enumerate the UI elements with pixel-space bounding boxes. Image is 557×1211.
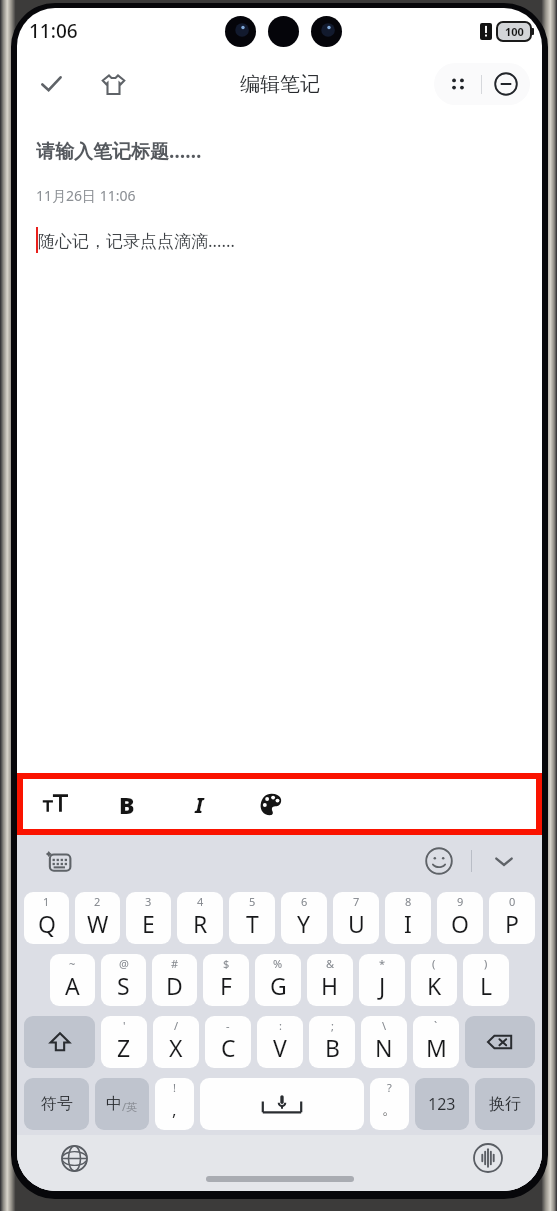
button[interactable]: 符号 [24,1078,89,1130]
staticText: 11月26日 11:06 [36,186,136,205]
staticText: 11:06 [29,18,78,44]
button[interactable]: $ [203,954,249,1006]
staticText: L [480,970,493,1001]
staticText: 0 [509,894,516,909]
staticText: ' [123,1018,126,1033]
button[interactable]: # [152,954,197,1006]
staticText: 3 [145,894,152,909]
staticText: F [220,970,232,1001]
button[interactable]: ; [309,1016,355,1068]
staticText: A [65,970,80,1001]
button[interactable]: Space [200,1078,364,1130]
button[interactable]: & [307,954,353,1006]
button[interactable]: 6 [281,892,327,944]
button[interactable]: Backspace [465,1016,535,1068]
staticText: 换行 [489,1094,521,1114]
staticText: ) [484,956,488,971]
staticText: ` [434,1018,438,1033]
button[interactable]: ) [463,954,509,1006]
button[interactable]: 5 [229,892,275,944]
staticText: - [226,1018,230,1033]
staticText: @ [119,956,129,971]
button[interactable]: ~ [50,954,95,1006]
staticText: , [172,1098,177,1121]
staticText: D [166,970,183,1001]
staticText: Z [117,1032,131,1063]
button[interactable]: Theme [93,64,133,104]
staticText: / [174,1018,179,1033]
staticText: 随心记，记录点点滴滴…… [38,229,235,252]
button[interactable]: 8 [385,892,431,944]
staticText: P [505,908,519,939]
button[interactable]: ` [413,1016,459,1068]
button[interactable]: Emoji [419,841,459,881]
button[interactable]: @ [101,954,146,1006]
staticText: 编辑笔记 [240,72,320,97]
staticText: 1 [43,894,50,909]
staticText: Y [297,908,311,939]
button[interactable]: Smart input [39,842,77,880]
button[interactable]: Font size [35,784,75,824]
staticText: C [221,1032,236,1063]
button[interactable]: Voice input [470,1140,506,1176]
button[interactable]: 2 [75,892,120,944]
button[interactable]: ( [411,954,457,1006]
staticText: N [375,1032,393,1063]
button[interactable]: 换行 [475,1078,535,1130]
staticText: 符号 [41,1094,73,1114]
staticText: B [325,1032,340,1063]
button[interactable]: Bold [107,784,147,824]
button[interactable]: 1 [24,892,69,944]
staticText: 5 [249,894,256,909]
button[interactable]: ' [101,1016,147,1068]
staticText: ( [432,956,436,971]
button[interactable]: \ [361,1016,407,1068]
staticText: ? [387,1080,392,1095]
staticText: \ [382,1018,387,1033]
staticText: V [273,1032,287,1063]
staticText: 9 [457,894,464,909]
button[interactable]: Language [57,1141,91,1175]
button[interactable]: ? [370,1078,409,1130]
button[interactable]: 0 [489,892,535,944]
staticText: U [348,908,365,939]
button[interactable]: 9 [437,892,483,944]
staticText: G [270,970,287,1001]
staticText: H [321,970,339,1001]
staticText: : [279,1018,282,1033]
staticText: W [87,908,109,939]
button[interactable]: Text color [251,784,291,824]
button[interactable]: Hide keyboard [484,841,524,881]
button[interactable]: / [153,1016,199,1068]
staticText: /英 [122,1099,138,1114]
staticText: 7 [353,894,360,909]
staticText: 请输入笔记标题…… [36,138,202,164]
button[interactable]: 7 [333,892,379,944]
button[interactable]: - [205,1016,251,1068]
staticText: ~ [69,956,76,971]
staticText: 100 [505,24,524,39]
button[interactable]: : [257,1016,303,1068]
staticText: % [273,956,283,971]
button[interactable]: 中 [95,1078,149,1130]
button[interactable]: Save [31,64,71,104]
button[interactable]: Shift [24,1016,95,1068]
staticText: J [379,970,386,1001]
staticText: O [451,908,469,939]
button[interactable]: 4 [177,892,223,944]
staticText: S [117,970,130,1001]
staticText: M [426,1032,447,1063]
button[interactable]: 3 [126,892,171,944]
button[interactable]: * [359,954,405,1006]
staticText: 。 [382,1100,397,1119]
button[interactable]: 123 [415,1078,469,1130]
staticText: I [404,908,412,939]
button[interactable]: More options [434,63,481,105]
button[interactable]: Italic [179,784,219,824]
staticText: & [326,956,335,971]
staticText: K [427,970,442,1001]
button[interactable]: ! [155,1078,194,1130]
button[interactable]: % [255,954,301,1006]
button[interactable]: Minimize [482,63,530,105]
staticText: 4 [197,894,204,909]
